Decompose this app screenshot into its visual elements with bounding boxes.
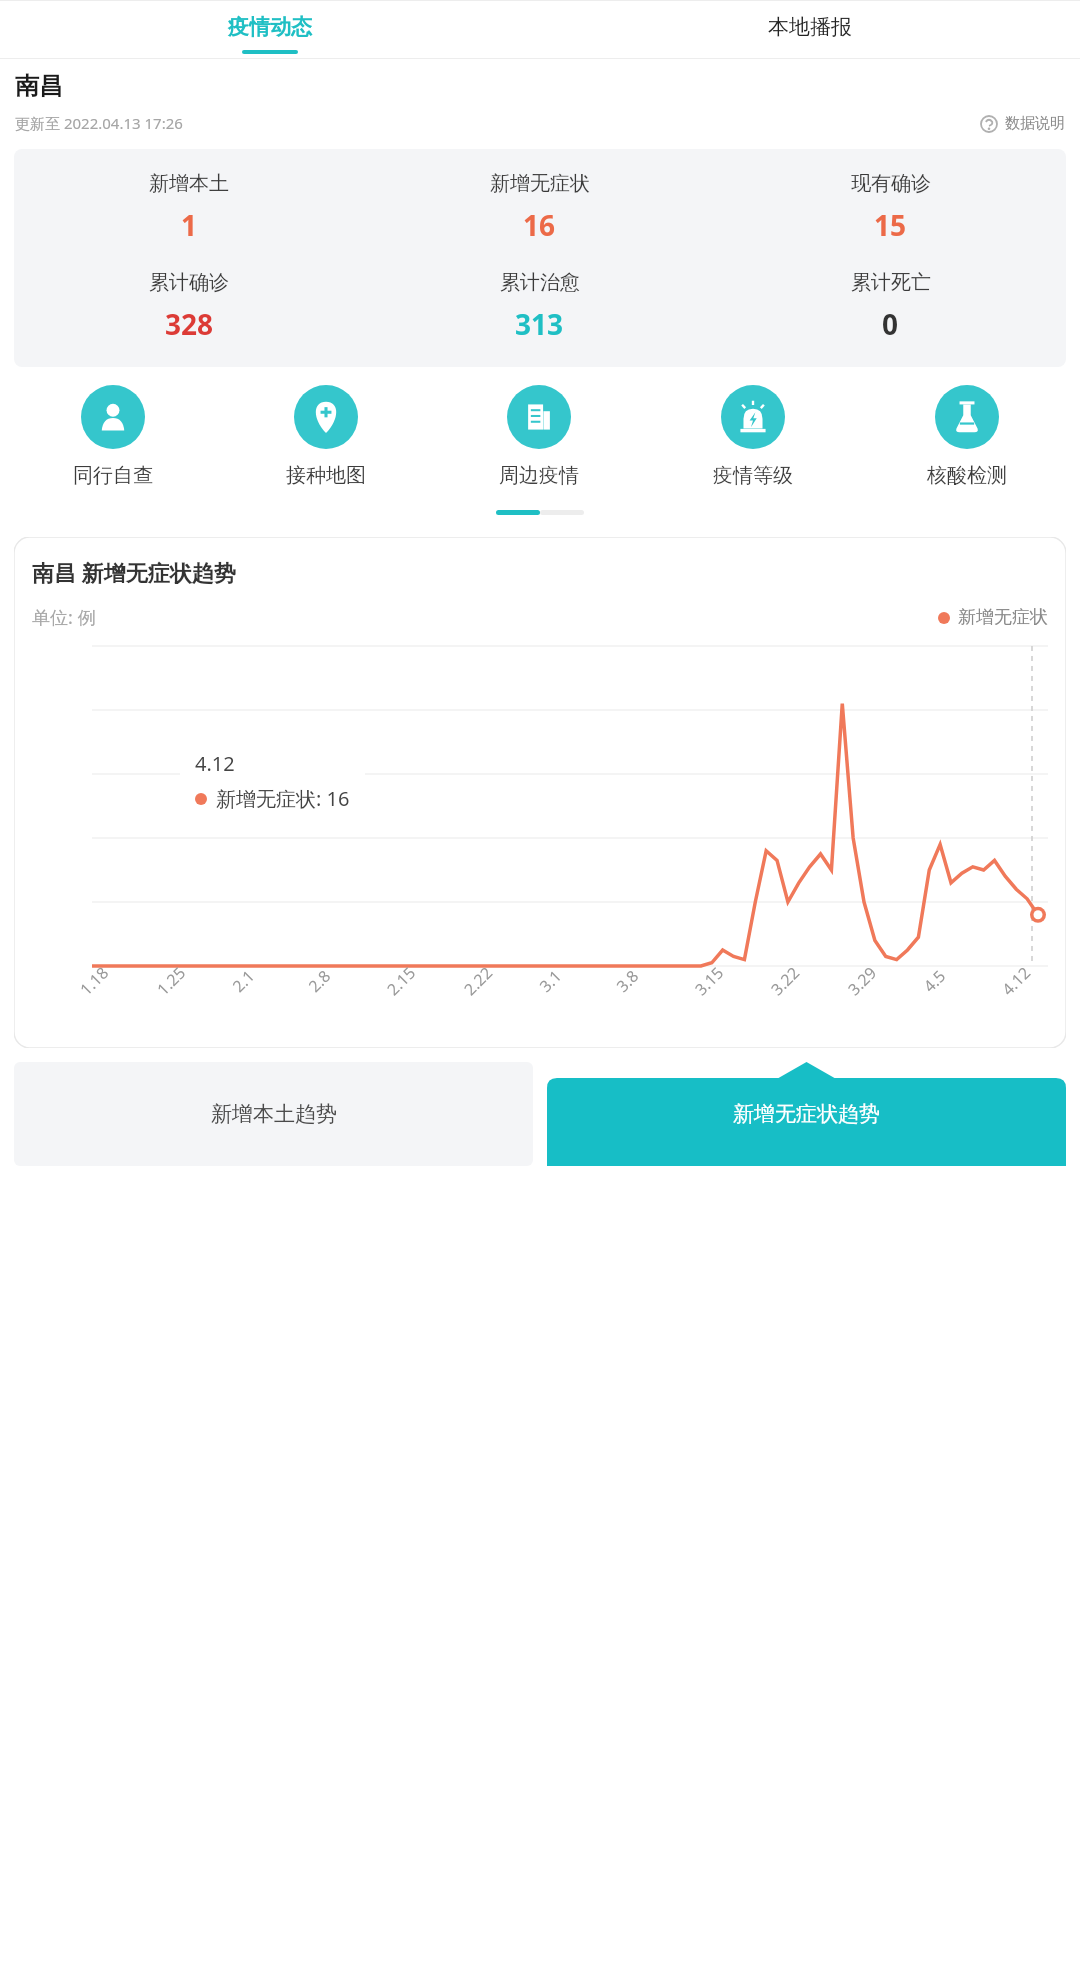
staticText: 南昌 新增无症状趋势 [32, 557, 236, 587]
staticText: 累计确诊 [149, 270, 229, 295]
staticText: 数据说明 [1005, 114, 1065, 133]
staticText: 1.25 [152, 962, 190, 1000]
staticText: 1.18 [75, 962, 113, 1000]
button[interactable]: 新增无症状趋势 [547, 1062, 1066, 1166]
staticText: 周边疫情 [499, 463, 579, 488]
staticText: 疫情动态 [228, 14, 312, 40]
staticText: 313 [515, 305, 564, 343]
button[interactable]: 疫情动态 [0, 0, 540, 59]
button[interactable]: 数据说明 [980, 114, 1065, 133]
staticText: 新增无症状趋势 [733, 1101, 880, 1127]
button[interactable]: 新增本土 [14, 171, 364, 244]
staticText: 3.22 [766, 962, 804, 1000]
staticText: 更新至 2022.04.13 17:26 [15, 113, 183, 133]
staticText: 现有确诊 [851, 171, 931, 196]
staticText: 2.22 [459, 962, 497, 1000]
staticText: 2.15 [382, 962, 420, 1000]
staticText: 0 [882, 305, 899, 343]
staticText: 同行自查 [73, 463, 153, 488]
staticText: 本地播报 [768, 14, 852, 40]
staticText: 4.12 [195, 750, 235, 777]
staticText: 1 [181, 206, 198, 244]
staticText: 新增无症状: 16 [216, 785, 350, 812]
button[interactable]: 本地播报 [540, 0, 1080, 59]
staticText: 新增无症状 [490, 171, 590, 196]
button[interactable]: 接种地图 [219, 385, 432, 488]
staticText: 单位: 例 [32, 605, 96, 630]
staticText: 16 [523, 206, 556, 244]
button[interactable]: 新增无症状 [364, 171, 715, 244]
staticText: 15 [874, 206, 907, 244]
button[interactable]: 累计确诊 [14, 270, 364, 343]
button[interactable]: 累计治愈 [364, 270, 715, 343]
staticText: 新增无症状 [958, 606, 1048, 629]
button[interactable]: 核酸检测 [860, 385, 1074, 488]
button[interactable]: 疫情等级 [646, 385, 860, 488]
staticText: 3.15 [690, 962, 728, 1000]
staticText: 南昌 [15, 71, 63, 101]
staticText: 核酸检测 [927, 463, 1007, 488]
staticText: 累计治愈 [500, 270, 580, 295]
staticText: 328 [165, 305, 214, 343]
staticText: 2.1 [228, 965, 259, 997]
staticText: 接种地图 [286, 463, 366, 488]
button[interactable]: 周边疫情 [432, 385, 646, 488]
button[interactable]: 现有确诊 [715, 171, 1066, 244]
staticText: 3.29 [843, 962, 881, 1000]
staticText: 累计死亡 [851, 270, 931, 295]
staticText: 疫情等级 [713, 463, 793, 488]
staticText: 4.12 [997, 962, 1035, 1000]
staticText: 3.8 [612, 965, 643, 997]
button[interactable]: 同行自查 [6, 385, 219, 488]
staticText: 2.8 [304, 965, 335, 997]
staticText: 3.1 [535, 965, 566, 997]
staticText: 新增本土 [149, 171, 229, 196]
staticText: 4.5 [919, 965, 950, 997]
staticText: 新增本土趋势 [211, 1101, 337, 1127]
button[interactable]: 新增本土趋势 [14, 1062, 533, 1166]
button[interactable]: 累计死亡 [715, 270, 1066, 343]
